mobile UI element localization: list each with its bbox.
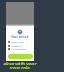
button[interactable] bbox=[8, 54, 33, 59]
button[interactable]: Sign in fast bbox=[8, 40, 33, 43]
other: Security bbox=[17, 29, 23, 35]
staticText: Protect it bbox=[11, 44, 22, 47]
staticText: Stay secure bbox=[11, 35, 29, 38]
staticText: your role bbox=[10, 65, 30, 69]
staticText: okay with your car during bbox=[0, 61, 40, 65]
staticText: Sign in fast bbox=[11, 40, 24, 43]
button[interactable]: No app extra bbox=[8, 47, 33, 50]
button[interactable]: Protect it bbox=[8, 44, 33, 47]
staticText: No app extra bbox=[11, 47, 26, 50]
